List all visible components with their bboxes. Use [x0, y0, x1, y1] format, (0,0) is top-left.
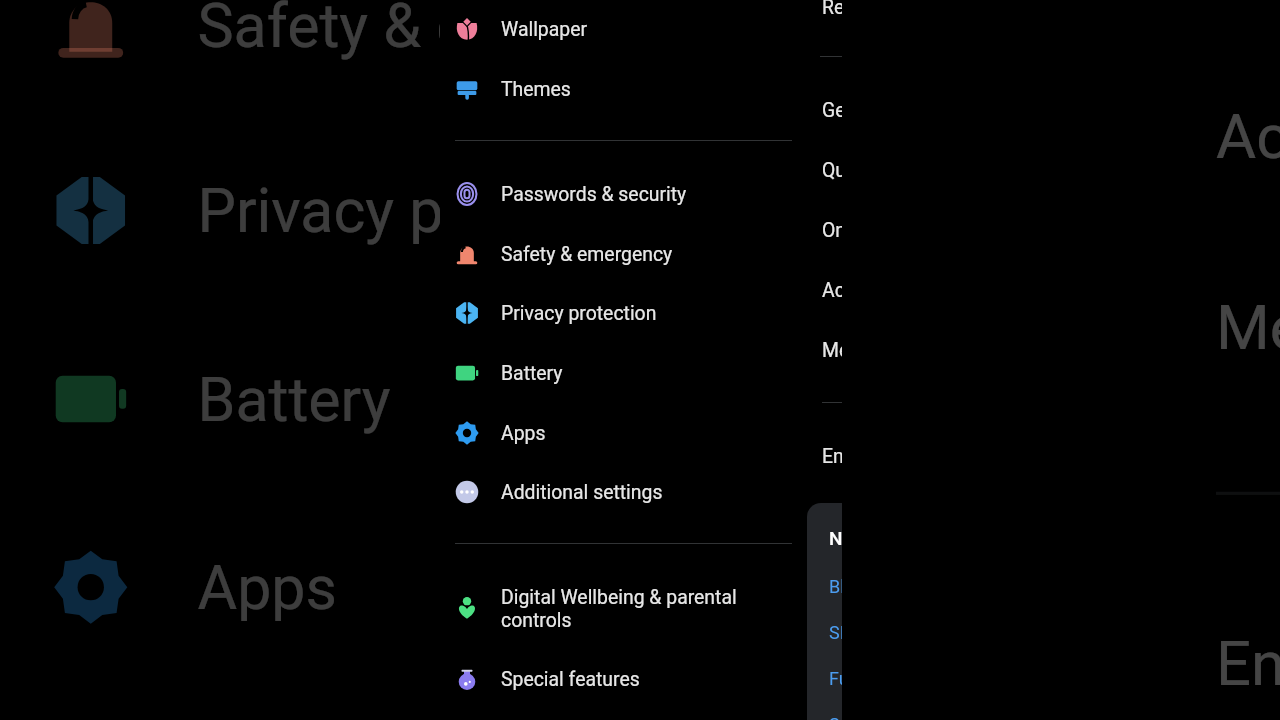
button[interactable]: Region [805, 0, 1170, 37]
button[interactable]: Apps [6, 493, 1152, 681]
staticText: SIM cards [829, 622, 910, 643]
other: Safety & emergency [455, 242, 479, 266]
button[interactable]: Enhanced features [1162, 568, 1280, 720]
staticText: Quick launch [822, 159, 1122, 182]
other: Digital Wellbeing & parental controls [455, 596, 479, 620]
staticText: Battery [197, 364, 982, 436]
staticText: Enhanced features [822, 445, 1122, 468]
button[interactable]: Safety & emergency [6, 0, 1152, 119]
button[interactable]: Digital Wellbeing & parental controls [440, 578, 805, 638]
staticText: Apps [197, 553, 982, 625]
button[interactable]: Gestures [805, 80, 1170, 140]
staticText: Network details [829, 527, 963, 549]
staticText: Additional settings [501, 481, 751, 504]
staticText: One-handed mode [822, 219, 1122, 242]
other: Privacy protection [455, 301, 479, 325]
other: Themes [455, 77, 479, 101]
button[interactable]: SIM cards [819, 614, 1119, 652]
staticText: Wallpaper [501, 18, 751, 41]
button[interactable]: Enhanced features [805, 426, 1170, 486]
other: Apps [455, 421, 479, 445]
staticText: Safety & emergency [501, 243, 751, 266]
button[interactable]: Bluetooth [819, 568, 1119, 606]
staticText: Region [822, 0, 1122, 19]
staticText: Safety & emergency [197, 0, 982, 63]
other: Special features [455, 667, 479, 691]
staticText: Special features [501, 668, 751, 691]
button[interactable]: Screen time [819, 706, 1119, 720]
other: Apps [53, 549, 128, 625]
other: Wallpaper [455, 17, 479, 41]
button[interactable]: Privacy protection [440, 283, 805, 343]
staticText: Themes [501, 78, 751, 101]
staticText: Battery [501, 362, 751, 385]
button[interactable]: Wallpaper [440, 0, 805, 59]
staticText: Digital Wellbeing & parental controls [501, 586, 751, 632]
button[interactable]: Memory extension [805, 320, 1170, 380]
button[interactable]: Quick launch [805, 140, 1170, 200]
button[interactable]: Passwords & security [440, 164, 805, 224]
button[interactable]: Additional settings [440, 462, 805, 522]
other: Battery [53, 361, 128, 436]
staticText: Accessibility [822, 279, 1122, 302]
button[interactable]: Special features [440, 649, 805, 709]
button[interactable]: Safety & emergency [440, 224, 805, 284]
button[interactable]: Accessibility [1162, 41, 1280, 231]
staticText: Gestures [822, 99, 1122, 122]
other: Additional settings [455, 480, 479, 504]
button[interactable]: Memory extension [1162, 231, 1280, 422]
staticText: Privacy protection [197, 176, 982, 248]
staticText: Memory extension [822, 339, 1122, 362]
staticText: Passwords & security [501, 183, 751, 206]
staticText: Memory extension [1216, 292, 1280, 365]
staticText: Full screen [829, 668, 916, 689]
button[interactable]: Apps [440, 403, 805, 463]
staticText: Bluetooth [829, 576, 907, 597]
other: Battery [455, 361, 479, 385]
button[interactable]: Battery [440, 343, 805, 403]
button[interactable]: Additional settings [6, 678, 1152, 720]
button[interactable]: One-handed mode [805, 200, 1170, 260]
button[interactable]: Battery [6, 305, 1152, 493]
other: Privacy protection [53, 173, 128, 248]
button[interactable]: Privacy protection [6, 116, 1152, 305]
button[interactable]: Full screen [819, 660, 1119, 698]
button[interactable]: Accessibility [805, 260, 1170, 320]
other: Passwords & security [455, 182, 479, 206]
staticText: Apps [501, 422, 751, 445]
staticText: Accessibility [1216, 101, 1280, 174]
staticText: Privacy protection [501, 302, 751, 325]
other: Safety & emergency [53, 0, 128, 63]
button[interactable]: Themes [440, 59, 805, 119]
staticText: Screen time [829, 714, 925, 720]
staticText: Enhanced features [1216, 628, 1280, 701]
button[interactable]: Network details [807, 503, 1137, 720]
